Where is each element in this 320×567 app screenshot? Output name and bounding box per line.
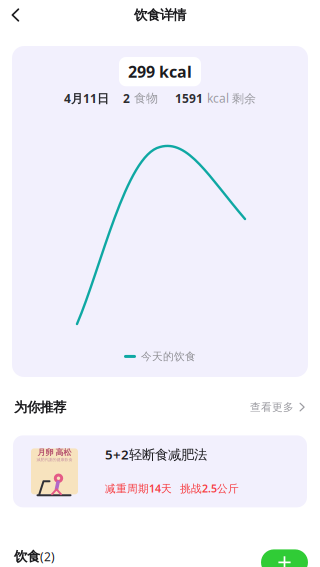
staticText: 月卵 高松 bbox=[37, 447, 71, 457]
staticText: 299 kcal bbox=[128, 61, 192, 82]
staticText: 饮食 bbox=[14, 548, 40, 565]
staticText: 挑战2.5公斤 bbox=[180, 481, 239, 495]
staticText: 減肥代謝的健康飲食 bbox=[36, 457, 72, 462]
button[interactable]: 月卵 高松 bbox=[13, 435, 307, 507]
staticText: 今天的饮食 bbox=[141, 350, 196, 363]
staticText: 4月11日 bbox=[64, 90, 109, 106]
staticText: 5+2轻断食减肥法 bbox=[105, 445, 207, 463]
staticText: 饮食详情 bbox=[134, 7, 186, 23]
button[interactable]: Back bbox=[0, 0, 43, 30]
staticText: (2) bbox=[40, 549, 55, 564]
button[interactable]: 查看更多 bbox=[250, 401, 306, 414]
staticText: 查看更多 bbox=[250, 401, 294, 414]
button[interactable]: Add food bbox=[261, 549, 308, 567]
staticText: kcal 剩余 bbox=[207, 90, 256, 106]
staticText: 食物 bbox=[134, 91, 158, 106]
staticText: 为你推荐 bbox=[14, 399, 66, 415]
staticText: 1591 bbox=[175, 90, 203, 106]
staticText: 2 bbox=[123, 90, 130, 106]
staticText: 减重周期14天 bbox=[105, 481, 172, 495]
